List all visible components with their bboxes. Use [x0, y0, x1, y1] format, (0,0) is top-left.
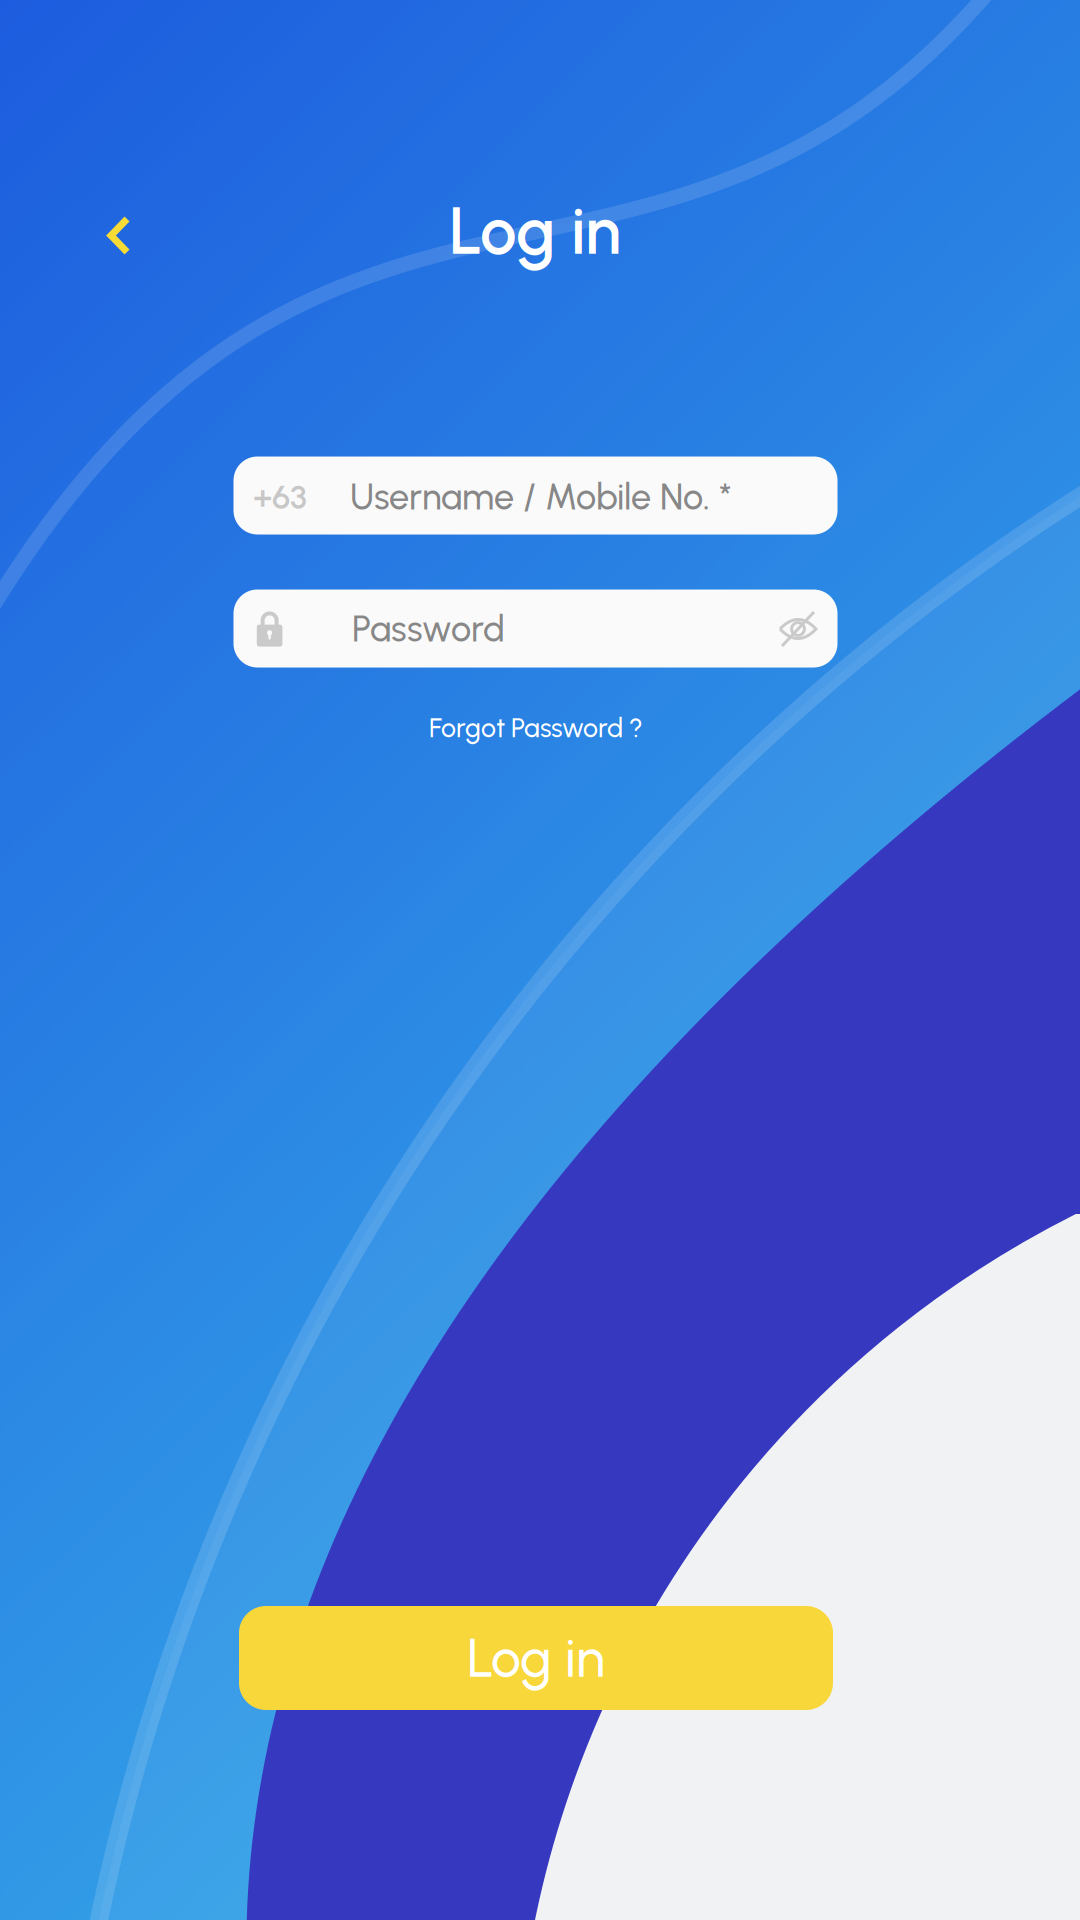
staticText: +63: [253, 477, 307, 517]
staticText: Forgot Password ?: [429, 712, 643, 744]
button[interactable]: Forgot Password ?: [386, 702, 686, 754]
staticText: Username / Mobile No. *: [350, 475, 732, 519]
button[interactable]: Log in: [239, 1606, 833, 1710]
button[interactable]: Show password: [758, 593, 838, 665]
staticText: Log in: [449, 192, 621, 270]
button[interactable]: Back: [71, 187, 167, 283]
staticText: Log in: [467, 1626, 605, 1690]
staticText: Password: [352, 607, 505, 651]
